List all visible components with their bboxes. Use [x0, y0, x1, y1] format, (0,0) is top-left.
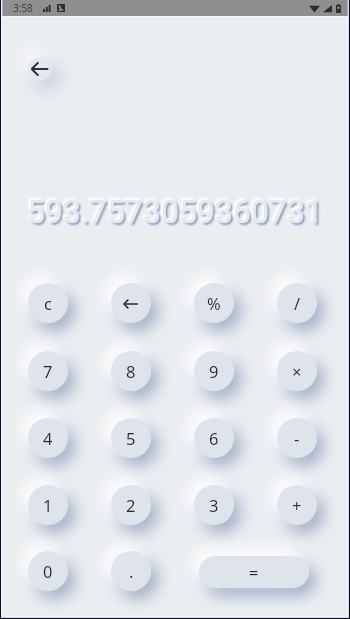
button[interactable]: =: [184, 536, 324, 606]
staticText: 6: [209, 427, 219, 449]
button[interactable]: 2: [96, 470, 166, 540]
button[interactable]: 5: [96, 403, 166, 473]
button[interactable]: 8: [96, 336, 166, 406]
staticText: -: [294, 427, 300, 449]
staticText: 7: [43, 360, 53, 382]
staticText: 3:58: [13, 1, 33, 15]
button[interactable]: 6: [179, 403, 249, 473]
staticText: 8: [126, 360, 136, 382]
staticText: +: [292, 494, 302, 516]
staticText: 0: [43, 560, 53, 582]
button[interactable]: -: [262, 403, 332, 473]
staticText: ×: [292, 360, 302, 382]
button[interactable]: ×: [262, 336, 332, 406]
button[interactable]: Backspace: [96, 268, 166, 338]
staticText: =: [249, 561, 259, 583]
button[interactable]: 3: [179, 470, 249, 540]
button[interactable]: 9: [179, 336, 249, 406]
staticText: 5: [126, 427, 136, 449]
staticText: 3: [209, 494, 219, 516]
staticText: /: [294, 292, 301, 314]
button[interactable]: .: [96, 536, 166, 606]
button[interactable]: 7: [13, 336, 83, 406]
staticText: 9: [209, 360, 219, 382]
staticText: .: [129, 560, 134, 582]
button[interactable]: /: [262, 268, 332, 338]
button[interactable]: %: [179, 268, 249, 338]
staticText: c: [44, 292, 52, 314]
staticText: %: [207, 292, 221, 314]
button[interactable]: 4: [13, 403, 83, 473]
staticText: 2: [126, 494, 136, 516]
button[interactable]: c: [13, 268, 83, 338]
button[interactable]: 0: [13, 536, 83, 606]
button[interactable]: Back: [22, 51, 58, 87]
staticText: 1: [43, 494, 53, 516]
button[interactable]: 1: [13, 470, 83, 540]
staticText: 4: [43, 427, 53, 449]
button[interactable]: +: [262, 470, 332, 540]
